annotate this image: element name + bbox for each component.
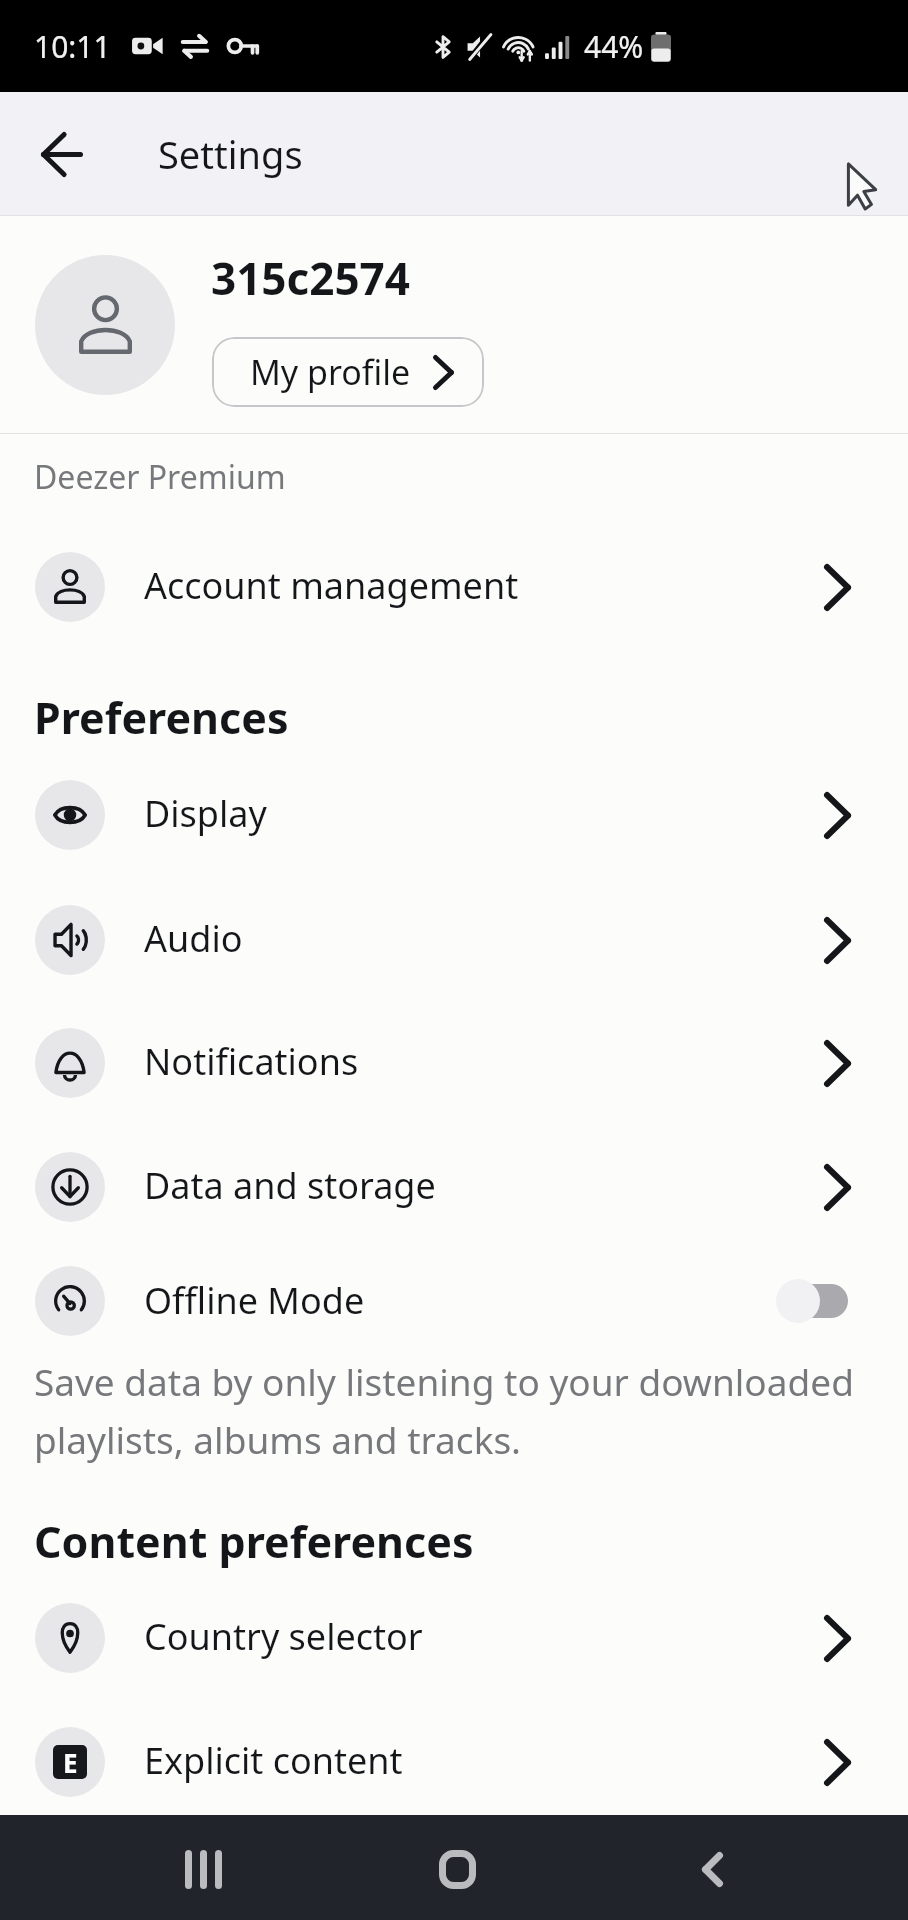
staticText: Audio <box>144 914 243 963</box>
staticText: Settings <box>158 128 303 180</box>
staticText: Notifications <box>144 1037 359 1086</box>
button[interactable]: Recent apps <box>143 1819 263 1920</box>
button[interactable]: Country selector <box>0 1576 908 1700</box>
button[interactable]: Notifications <box>0 1001 908 1125</box>
button[interactable]: Back <box>26 118 98 190</box>
button[interactable]: 315c2574 <box>0 216 908 433</box>
staticText: My profile <box>250 349 411 395</box>
staticText: Country selector <box>144 1612 423 1661</box>
button[interactable]: Offline Mode toggle <box>776 1277 848 1325</box>
staticText: Save data by only listening to your down… <box>34 1356 854 1465</box>
staticText: Account management <box>144 561 519 610</box>
staticText: 10:11 <box>34 26 111 67</box>
button[interactable]: Home <box>397 1819 517 1920</box>
button[interactable]: My profile <box>212 337 484 407</box>
staticText: Deezer Premium <box>34 455 286 499</box>
staticText: E <box>63 1745 78 1779</box>
button[interactable]: Account management <box>0 525 908 649</box>
staticText: Content preferences <box>34 1512 474 1571</box>
staticText: 44% <box>584 26 644 67</box>
staticText: Data and storage <box>144 1161 436 1210</box>
button[interactable]: Offline Mode <box>0 1239 908 1363</box>
staticText: Preferences <box>34 688 289 747</box>
staticText: Offline Mode <box>144 1276 365 1325</box>
staticText: 315c2574 <box>211 248 410 308</box>
button[interactable]: Display <box>0 753 908 877</box>
staticText: Explicit content <box>144 1736 403 1785</box>
staticText: Display <box>144 789 267 838</box>
button[interactable]: E <box>0 1700 908 1824</box>
button[interactable]: Back <box>652 1819 772 1920</box>
button[interactable]: Audio <box>0 878 908 1002</box>
button[interactable]: Data and storage <box>0 1125 908 1249</box>
